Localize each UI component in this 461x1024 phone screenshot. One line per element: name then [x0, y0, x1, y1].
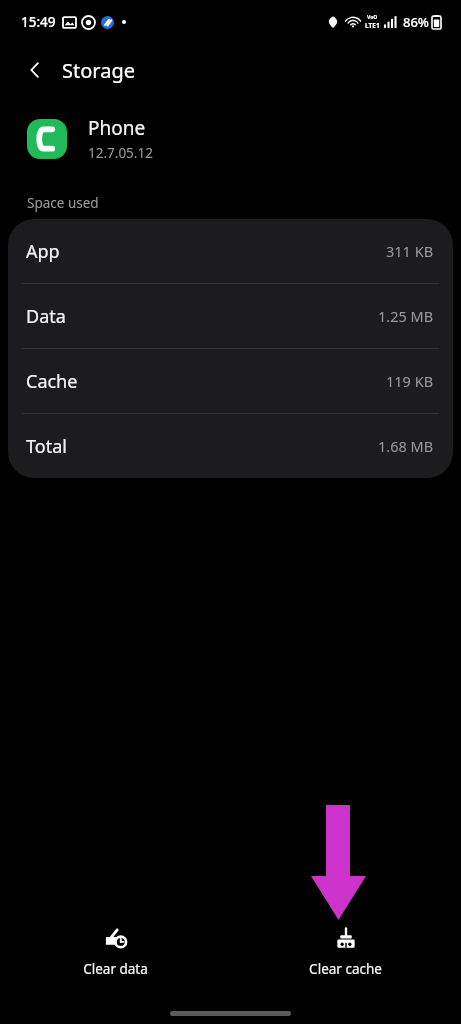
- staticText: Phone: [88, 115, 146, 141]
- staticText: Space used: [27, 194, 99, 212]
- staticText: App: [26, 239, 60, 264]
- button[interactable]: Total: [8, 414, 453, 478]
- staticText: 311 KB: [386, 241, 434, 261]
- staticText: 119 KB: [386, 371, 434, 391]
- button[interactable]: Clear data: [55, 921, 176, 984]
- staticText: Clear data: [83, 960, 148, 978]
- button[interactable]: App: [8, 219, 453, 283]
- staticText: 1.25 MB: [378, 306, 434, 326]
- staticText: Cache: [26, 369, 78, 394]
- staticText: Storage: [62, 57, 135, 84]
- button[interactable]: Cache: [8, 349, 453, 413]
- staticText: Clear cache: [309, 960, 382, 978]
- staticText: Data: [26, 304, 66, 329]
- staticText: 12.7.05.12: [88, 144, 153, 162]
- staticText: 15:49: [21, 13, 56, 31]
- staticText: LTE1: [365, 21, 380, 30]
- button[interactable]: Back: [14, 49, 56, 91]
- staticText: 86%: [403, 13, 429, 31]
- button[interactable]: Clear cache: [281, 921, 410, 984]
- staticText: Total: [26, 434, 67, 459]
- button[interactable]: Data: [8, 284, 453, 348]
- staticText: 1.68 MB: [378, 436, 434, 456]
- staticText: VoO: [367, 14, 378, 21]
